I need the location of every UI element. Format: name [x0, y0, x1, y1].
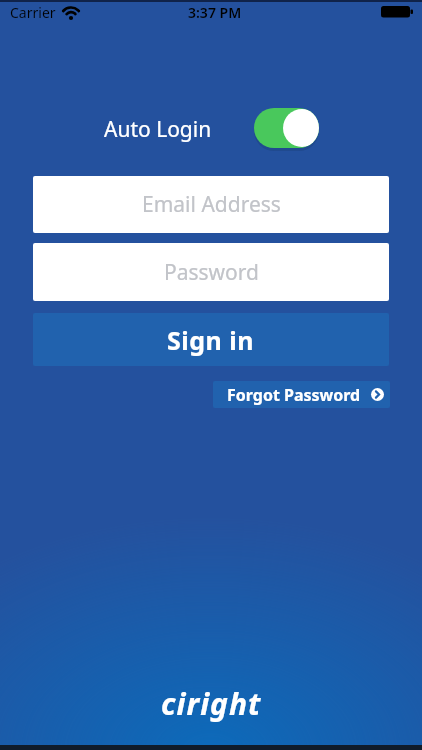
staticText: 3:37 PM: [188, 3, 242, 22]
button[interactable]: Forgot Password: [213, 381, 390, 408]
staticText: Carrier: [10, 3, 56, 22]
button[interactable]: [254, 108, 319, 148]
button[interactable]: Password: [33, 243, 389, 301]
staticText: Auto Login: [104, 115, 212, 144]
staticText: ciright: [161, 683, 262, 724]
staticText: Sign in: [167, 323, 255, 357]
staticText: Email Address: [142, 190, 281, 219]
button[interactable]: Sign in: [33, 313, 389, 366]
staticText: Password: [164, 258, 259, 287]
staticText: Forgot Password: [227, 384, 361, 406]
button[interactable]: Email Address: [33, 176, 389, 233]
